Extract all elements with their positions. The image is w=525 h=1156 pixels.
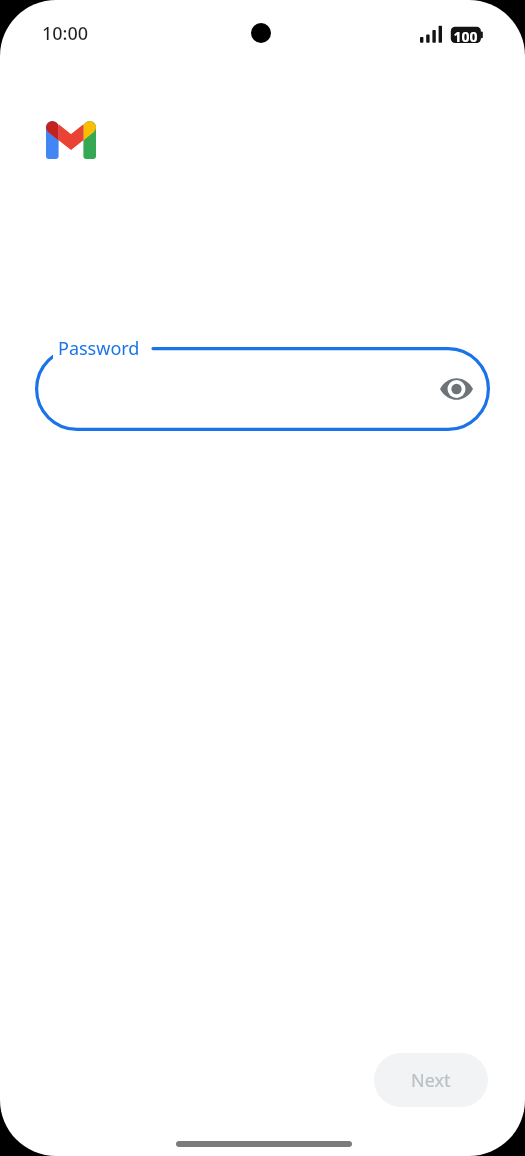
- button[interactable]: Next: [374, 1053, 488, 1107]
- staticText: Next: [411, 1068, 451, 1093]
- staticText: 10:00: [42, 21, 89, 46]
- staticText: Password: [58, 336, 140, 361]
- button[interactable]: Show password: [432, 365, 480, 413]
- staticText: 100: [450, 27, 481, 46]
